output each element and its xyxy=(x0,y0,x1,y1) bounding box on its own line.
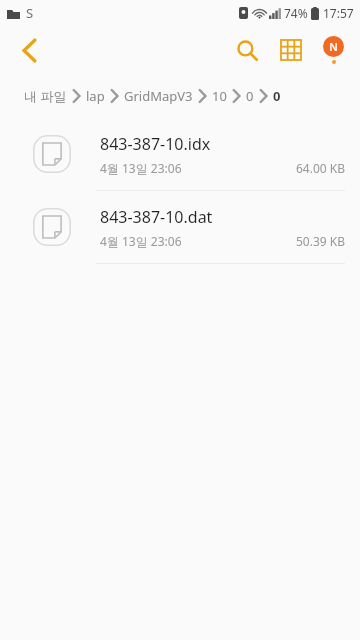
staticText: 4월 13일 23:06 xyxy=(100,160,182,176)
staticText: N xyxy=(329,39,338,54)
button[interactable]: 내 파일 xyxy=(23,83,68,109)
button[interactable]: lap xyxy=(85,83,106,109)
button[interactable]: 843-387-10.dat xyxy=(0,191,360,263)
staticText: 64.00 KB xyxy=(295,160,345,176)
staticText: 17:57 xyxy=(323,5,354,21)
button[interactable]: 0 xyxy=(245,83,255,109)
staticText: GridMapV3 xyxy=(124,87,193,105)
button[interactable]: 843-387-10.idx xyxy=(0,118,360,190)
button[interactable]: Back xyxy=(9,30,49,70)
staticText: 843-387-10.idx xyxy=(100,133,211,155)
staticText: 843-387-10.dat xyxy=(100,206,213,228)
staticText: 74% xyxy=(284,5,308,21)
button[interactable]: 0 xyxy=(272,83,282,109)
staticText: 50.39 KB xyxy=(295,233,345,249)
staticText: 0 xyxy=(273,87,281,105)
staticText: 10 xyxy=(212,87,227,105)
button[interactable]: More options xyxy=(313,30,353,70)
button[interactable]: GridMapV3 xyxy=(123,83,194,109)
button[interactable]: 10 xyxy=(211,83,228,109)
staticText: 내 파일 xyxy=(24,87,67,105)
button[interactable]: Search xyxy=(225,28,269,72)
staticText: 0 xyxy=(246,87,254,105)
staticText: S xyxy=(26,4,34,22)
staticText: lap xyxy=(86,87,105,105)
staticText: 4월 13일 23:06 xyxy=(100,233,182,249)
button[interactable]: Change view xyxy=(269,28,313,72)
